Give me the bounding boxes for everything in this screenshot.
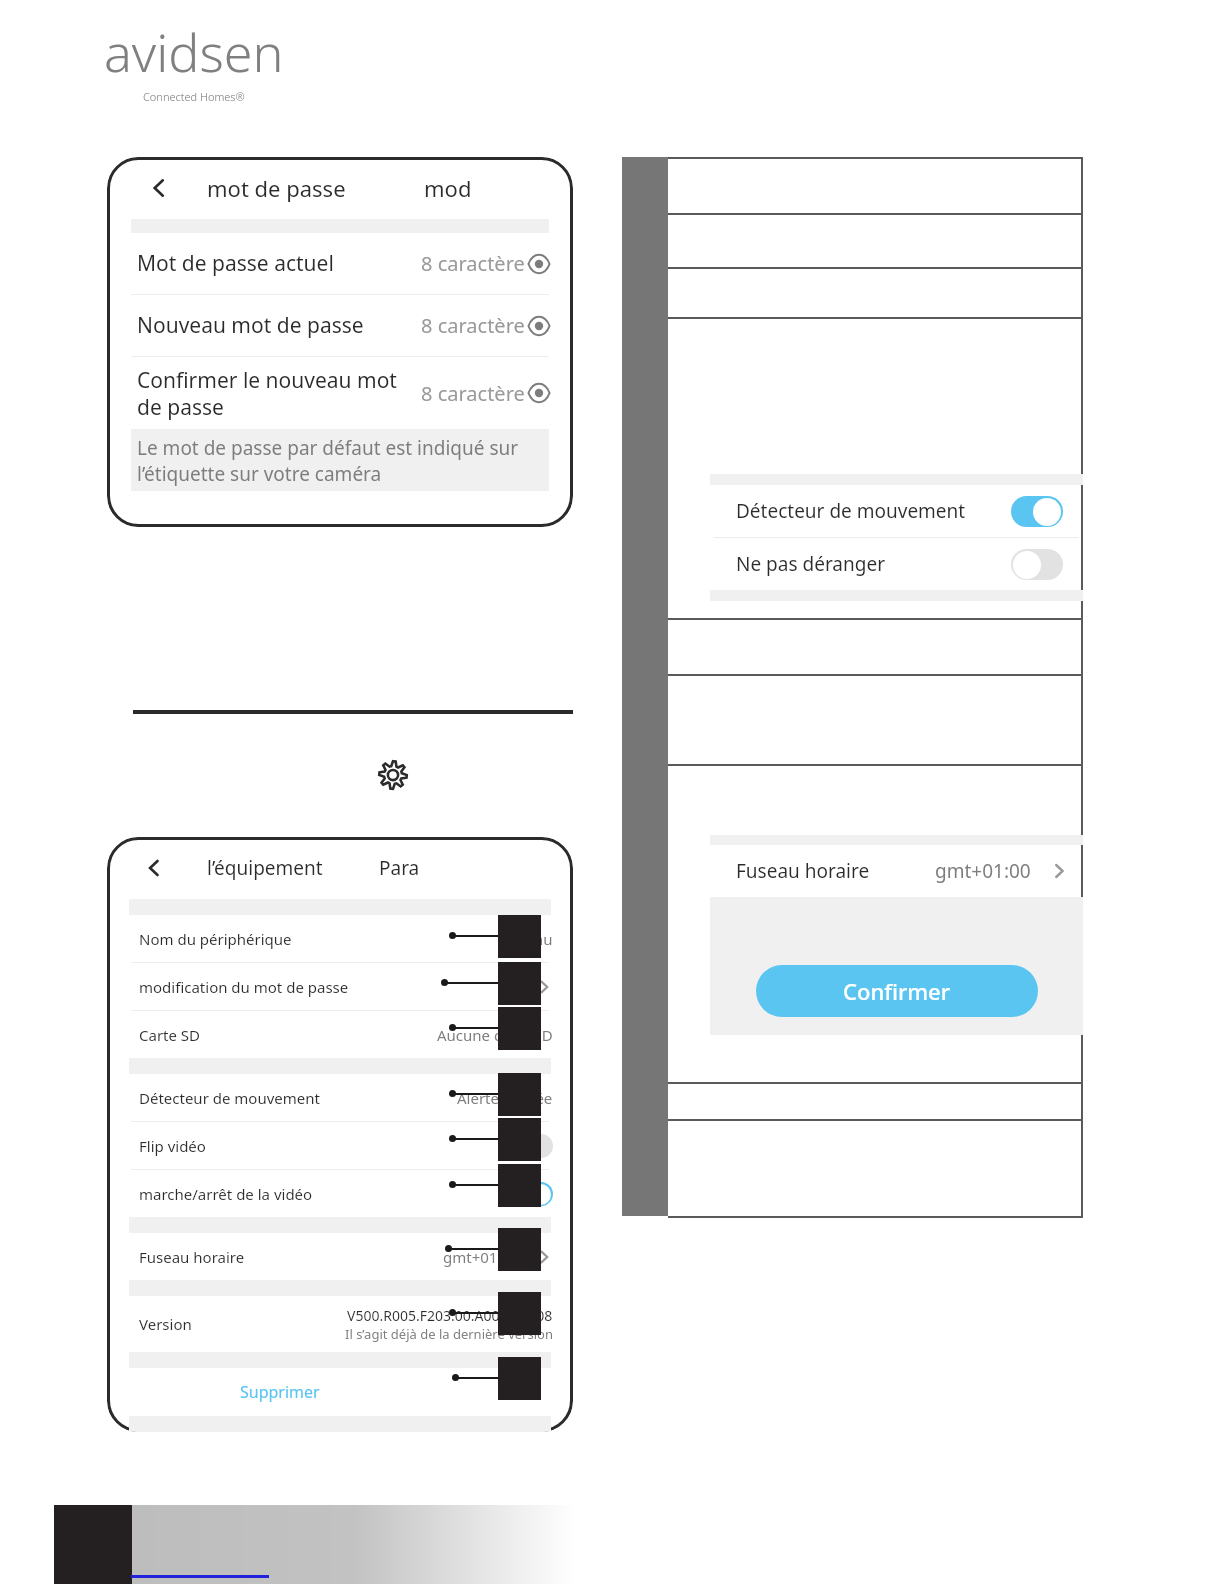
staticText: Version <box>139 1314 192 1334</box>
staticText: Confirmer le nouveau mot de passe <box>137 366 421 421</box>
button[interactable]: Fuseau horaire <box>139 1233 553 1280</box>
staticText: Fuseau horaire <box>736 858 870 884</box>
staticText: Nom du périphérique <box>139 929 292 949</box>
staticText: Carte SD <box>139 1025 201 1045</box>
button[interactable]: Ne pas déranger <box>736 538 1063 590</box>
other: Show password <box>527 314 551 338</box>
staticText: gmt+01:00 <box>935 858 1031 884</box>
staticText: V500.R005.F203.00.A0020.B008 <box>347 1306 553 1325</box>
button[interactable]: Supprimer <box>107 1368 573 1416</box>
staticText: avidsen <box>104 16 284 87</box>
staticText: 8 caractère <box>421 312 525 339</box>
staticText: Ne pas déranger <box>736 551 885 577</box>
button[interactable]: Carte SD <box>139 1011 553 1058</box>
button[interactable]: Back <box>147 176 171 200</box>
staticText: Aucune carte SD <box>437 1025 553 1045</box>
button[interactable]: Back <box>143 857 165 879</box>
staticText: modification du mot de passe <box>139 977 349 997</box>
staticText: bureau <box>502 929 553 949</box>
staticText: Fuseau horaire <box>139 1247 245 1267</box>
staticText: Nouveau mot de passe <box>137 311 421 340</box>
staticText: mot de passe <box>207 173 346 203</box>
staticText: l’équipement <box>207 855 323 881</box>
button[interactable]: modification du mot de passe <box>139 963 553 1010</box>
button[interactable]: Confirmer <box>756 965 1038 1017</box>
button[interactable]: Détecteur de mouvement <box>736 485 1063 537</box>
other: Show password <box>527 381 551 405</box>
staticText: Détecteur de mouvement <box>139 1088 320 1108</box>
staticText: Supprimer <box>240 1381 320 1403</box>
staticText: marche/arrêt de la vidéo <box>139 1184 313 1204</box>
staticText: Confirmer <box>843 976 951 1006</box>
button[interactable]: Nom du périphérique <box>139 915 553 962</box>
button[interactable] <box>511 1134 553 1158</box>
button[interactable] <box>1011 549 1063 580</box>
staticText: Le mot de passe par défaut est indiqué s… <box>137 435 519 487</box>
button[interactable] <box>1011 496 1063 527</box>
staticText: 8 caractère <box>421 250 525 277</box>
button[interactable] <box>511 1182 553 1206</box>
button[interactable]: Nouveau mot de passe <box>137 295 551 356</box>
staticText: Alerte activée <box>457 1088 553 1108</box>
staticText: Flip vidéo <box>139 1136 206 1156</box>
button[interactable]: Détecteur de mouvement <box>139 1074 553 1121</box>
staticText: Para <box>379 855 420 881</box>
button[interactable]: Fuseau horaire <box>736 845 1069 897</box>
staticText: Il s’agit déjà de la dernière version <box>345 1325 553 1343</box>
button[interactable]: Settings <box>378 760 408 790</box>
button[interactable]: Confirmer le nouveau mot de passe <box>137 357 551 429</box>
button[interactable]: Flip vidéo <box>139 1122 553 1169</box>
staticText: mod <box>424 173 472 203</box>
staticText: Connected Homes® <box>143 89 245 104</box>
staticText: gmt+01:00 <box>443 1247 519 1267</box>
staticText: Détecteur de mouvement <box>736 498 966 524</box>
other: Show password <box>527 252 551 276</box>
staticText: Mot de passe actuel <box>137 249 421 278</box>
button[interactable]: marche/arrêt de la vidéo <box>139 1170 553 1217</box>
staticText: 8 caractère <box>421 380 525 407</box>
button[interactable]: Mot de passe actuel <box>137 233 551 294</box>
